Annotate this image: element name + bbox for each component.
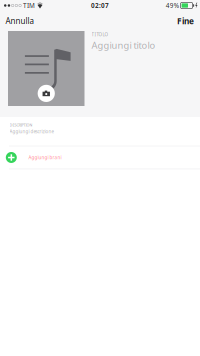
staticText: Aggiungi descrizione (9, 129, 53, 135)
staticText: Annulla (5, 16, 33, 26)
staticText: 49% (166, 1, 179, 10)
button[interactable]: Aggiungi titolo (91, 40, 155, 51)
staticText: TIM (23, 1, 35, 10)
staticText: TITOLO (91, 31, 108, 38)
staticText: Fine (177, 15, 194, 27)
button[interactable]: Scegli immagine (8, 31, 84, 106)
staticText: Aggiungi titolo (91, 39, 155, 51)
staticText: DESCRIPTION (9, 122, 32, 128)
staticText: 02:07 (91, 1, 109, 10)
button[interactable]: Aggiungi descrizione (9, 128, 53, 135)
button[interactable]: Annulla (0, 11, 39, 31)
button[interactable]: Fine (171, 11, 200, 31)
staticText: Aggiungi brani (29, 154, 62, 161)
button[interactable]: Aggiungi brani (0, 146, 200, 168)
